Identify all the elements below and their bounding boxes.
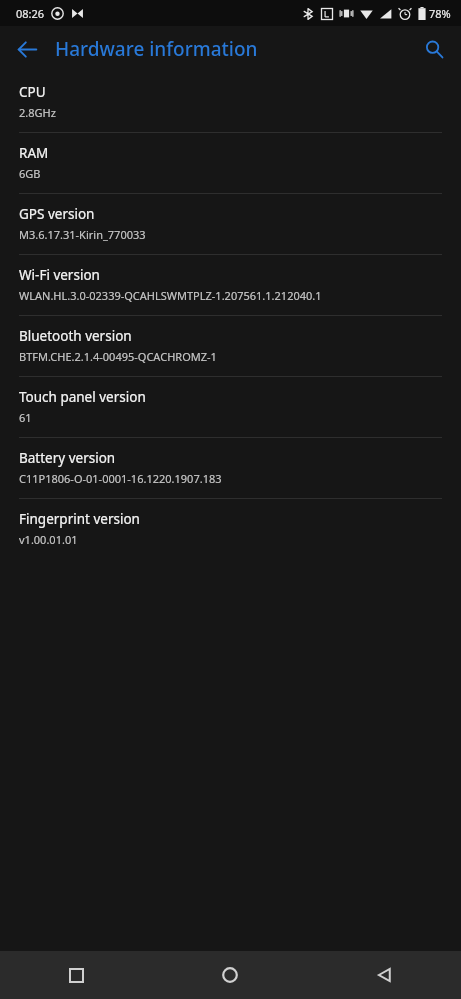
button[interactable]: Back xyxy=(8,30,46,68)
button[interactable]: Battery version xyxy=(0,438,461,498)
button[interactable]: Recent apps xyxy=(0,951,153,999)
button[interactable]: Fingerprint version xyxy=(0,499,461,559)
staticText: 61 xyxy=(19,410,32,425)
button[interactable]: GPS version xyxy=(0,194,461,254)
staticText: RAM xyxy=(19,144,49,162)
staticText: 2.8GHz xyxy=(19,105,56,120)
button[interactable]: Back xyxy=(307,951,461,999)
button[interactable]: CPU xyxy=(0,72,461,132)
staticText: Bluetooth version xyxy=(19,327,132,345)
button[interactable]: Touch panel version xyxy=(0,377,461,437)
staticText: Wi-Fi version xyxy=(19,266,100,284)
button[interactable]: Search xyxy=(415,30,453,68)
staticText: BTFM.CHE.2.1.4-00495-QCACHROMZ-1 xyxy=(19,349,217,364)
staticText: GPS version xyxy=(19,205,95,223)
staticText: v1.00.01.01 xyxy=(19,532,78,547)
staticText: 08:26 xyxy=(16,6,45,21)
staticText: C11P1806-O-01-0001-16.1220.1907.183 xyxy=(19,471,222,486)
button[interactable]: RAM xyxy=(0,133,461,193)
staticText: CPU xyxy=(19,83,46,101)
button[interactable]: Wi-Fi version xyxy=(0,255,461,315)
button[interactable]: Bluetooth version xyxy=(0,316,461,376)
button[interactable]: Home xyxy=(153,951,307,999)
staticText: 78% xyxy=(429,6,451,21)
staticText: Touch panel version xyxy=(19,388,146,406)
staticText: Hardware information xyxy=(55,36,258,62)
staticText: Fingerprint version xyxy=(19,510,140,528)
staticText: 6GB xyxy=(19,166,41,181)
staticText: WLAN.HL.3.0-02339-QCAHLSWMTPLZ-1.207561.… xyxy=(19,288,322,303)
staticText: Battery version xyxy=(19,449,116,467)
staticText: M3.6.17.31-Kirin_770033 xyxy=(19,227,146,242)
